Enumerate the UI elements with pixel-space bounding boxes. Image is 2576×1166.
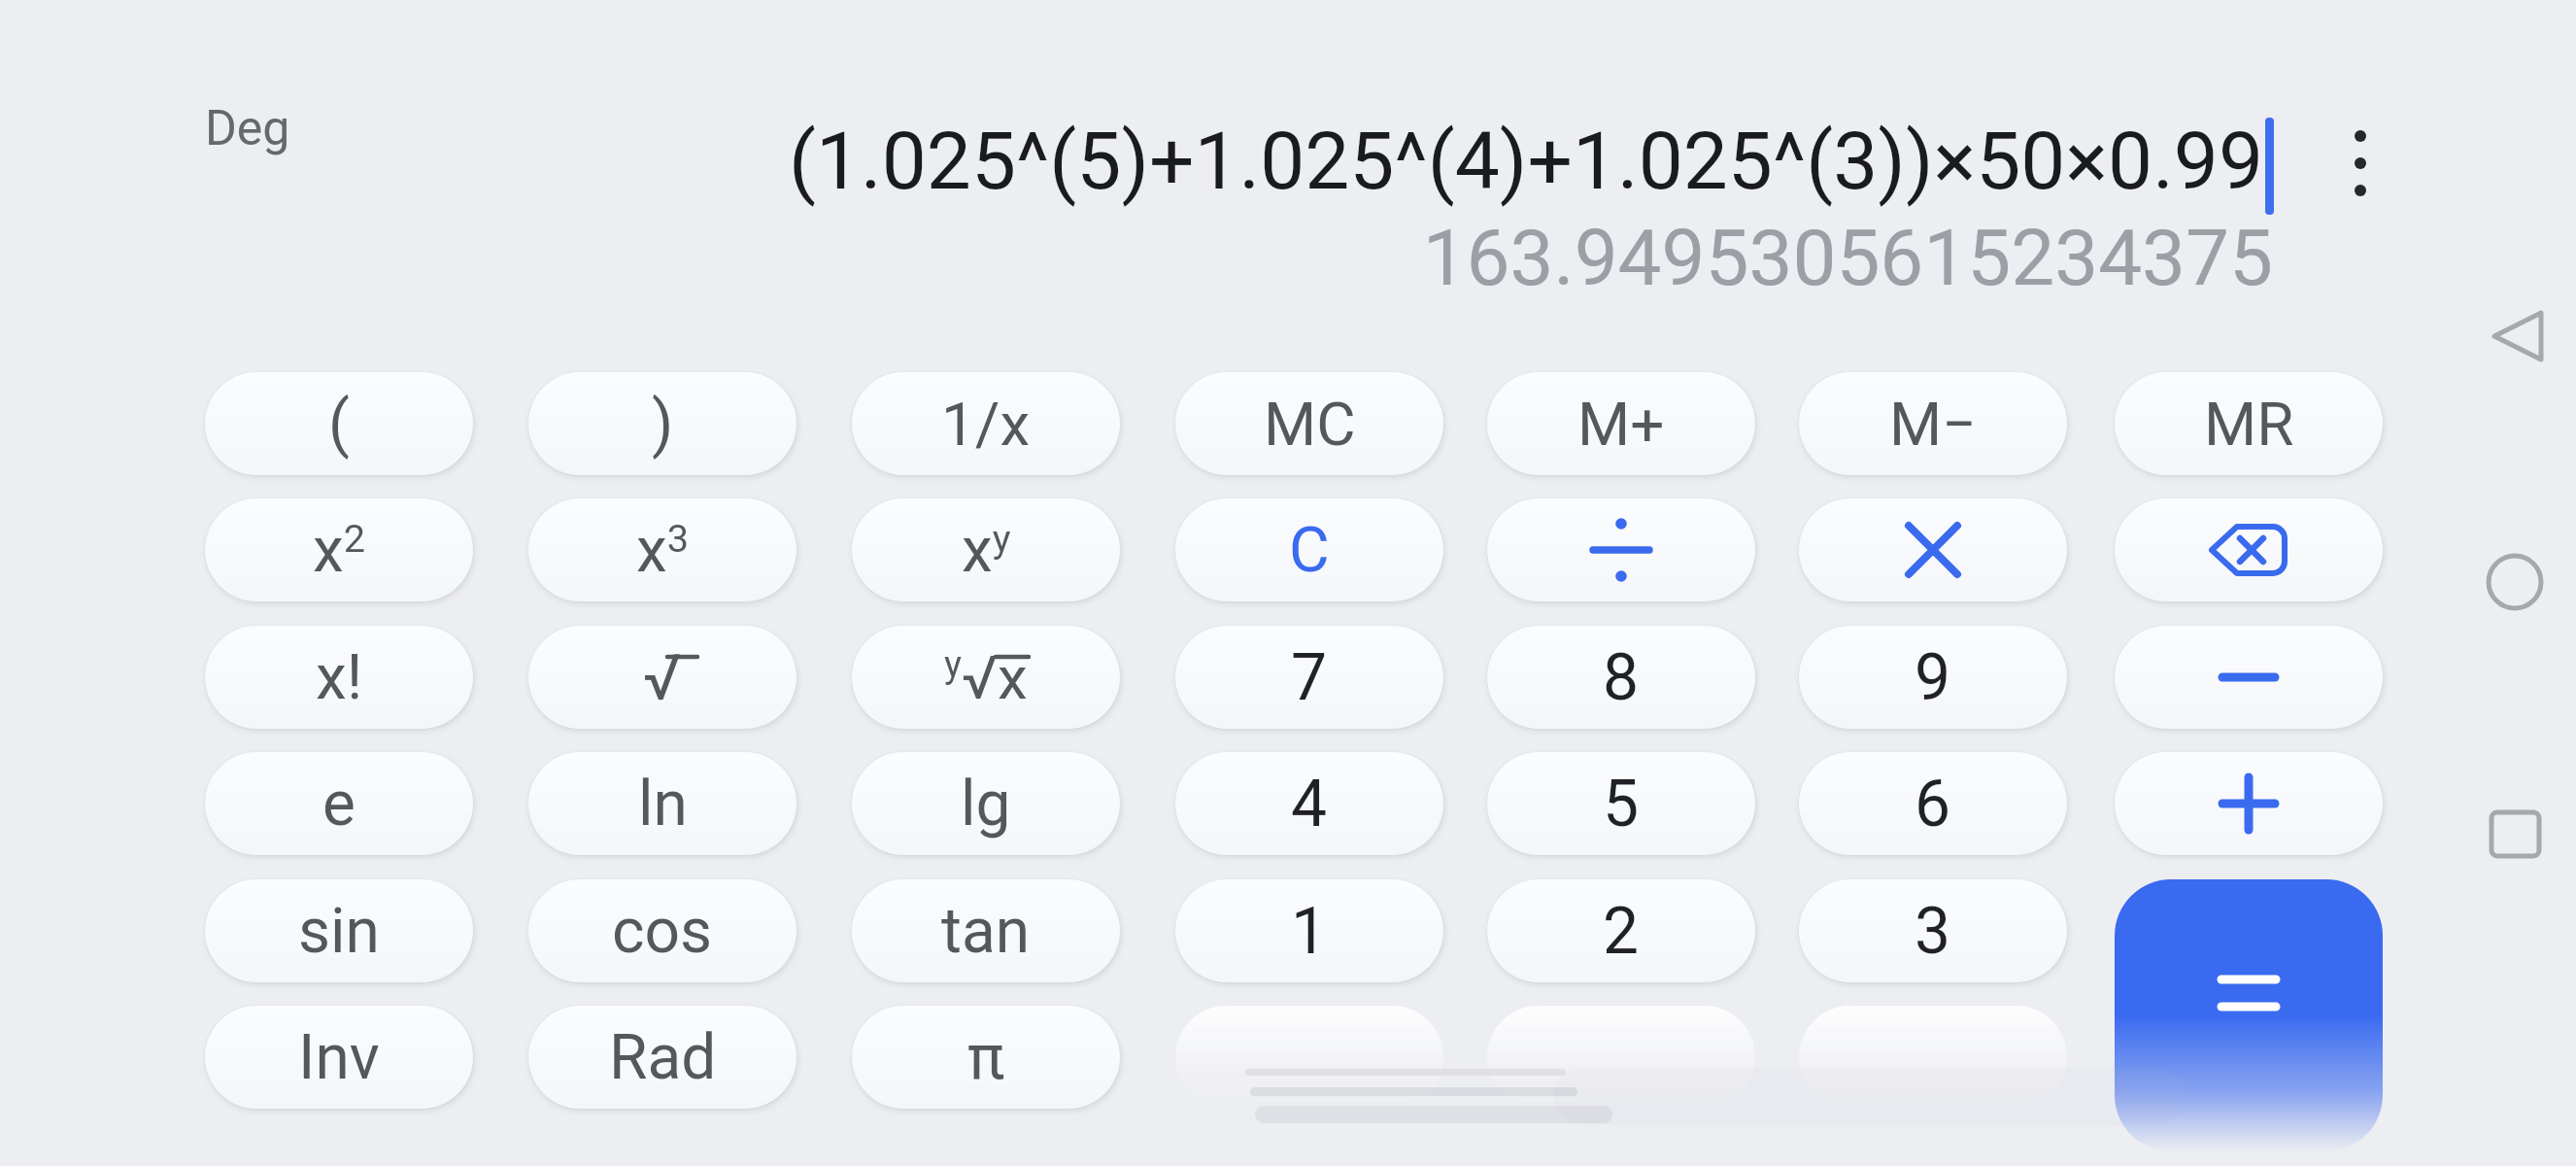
button[interactable]: MR <box>2115 372 2383 475</box>
staticText: 4 <box>1291 767 1328 841</box>
button[interactable] <box>2115 498 2383 601</box>
button[interactable] <box>2467 288 2568 389</box>
button[interactable]: Inv <box>205 1006 473 1109</box>
staticText: MR <box>2204 389 2294 460</box>
button[interactable] <box>2467 532 2568 633</box>
button[interactable] <box>1799 498 2067 601</box>
button[interactable]: 8 <box>1487 626 1755 729</box>
staticText: 3 <box>1915 894 1951 969</box>
staticText: 1 <box>1291 894 1328 969</box>
staticText: 8 <box>1603 640 1640 715</box>
button[interactable]: cos <box>528 879 797 982</box>
staticText: ) <box>652 388 674 461</box>
staticText: 2 <box>1603 894 1640 969</box>
button[interactable]: 3 <box>1799 879 2067 982</box>
staticText: M− <box>1889 389 1977 460</box>
staticText: (1.025^(5)+1.025^(4)+1.025^(3))×50×0.99 <box>0 115 2263 208</box>
button[interactable]: lg <box>852 752 1120 855</box>
button[interactable] <box>2115 879 2383 1151</box>
staticText: x! <box>316 641 363 714</box>
staticText: 7 <box>1291 640 1328 715</box>
button[interactable]: M+ <box>1487 372 1755 475</box>
button[interactable]: xy <box>852 498 1120 601</box>
staticText: xy <box>962 514 1011 587</box>
button[interactable]: 5 <box>1487 752 1755 855</box>
staticText: ln <box>638 768 688 840</box>
staticText: 163.9495305615234375 <box>0 213 2273 304</box>
staticText: MC <box>1264 389 1356 460</box>
button[interactable]: √ <box>528 626 797 729</box>
staticText: M+ <box>1577 389 1665 460</box>
button[interactable]: 9 <box>1799 626 2067 729</box>
staticText: lg <box>961 768 1011 840</box>
button[interactable]: 1 <box>1175 879 1443 982</box>
staticText: tan <box>941 895 1031 968</box>
button[interactable]: 7 <box>1175 626 1443 729</box>
staticText: e <box>322 768 356 840</box>
button[interactable] <box>2115 752 2383 855</box>
button[interactable]: ) <box>528 372 797 475</box>
button[interactable]: Deg <box>205 100 290 157</box>
button[interactable] <box>1487 498 1755 601</box>
button[interactable]: Rad <box>528 1006 797 1109</box>
staticText: 6 <box>1915 767 1951 841</box>
staticText: Rad <box>609 1021 717 1094</box>
button[interactable]: 2 <box>1487 879 1755 982</box>
button[interactable]: y√x <box>852 626 1120 729</box>
button[interactable]: x! <box>205 626 473 729</box>
button[interactable]: e <box>205 752 473 855</box>
button[interactable]: 6 <box>1799 752 2067 855</box>
staticText: x2 <box>313 514 366 587</box>
staticText: 5 <box>1603 767 1640 841</box>
staticText: sin <box>298 895 380 968</box>
button[interactable]: x3 <box>528 498 797 601</box>
button[interactable] <box>2467 783 2568 884</box>
button[interactable]: MC <box>1175 372 1443 475</box>
staticText: C <box>1289 514 1330 587</box>
button[interactable]: 4 <box>1175 752 1443 855</box>
staticText: Inv <box>298 1021 380 1094</box>
staticText: x3 <box>636 514 690 587</box>
button[interactable] <box>2115 626 2383 729</box>
button[interactable]: π <box>852 1006 1120 1109</box>
button[interactable]: ln <box>528 752 797 855</box>
button[interactable] <box>2331 126 2390 204</box>
button[interactable]: 1/x <box>852 372 1120 475</box>
button[interactable]: M− <box>1799 372 2067 475</box>
staticText: 9 <box>1915 640 1951 715</box>
staticText: 1/x <box>941 389 1031 460</box>
button[interactable]: tan <box>852 879 1120 982</box>
staticText: √ <box>643 640 682 715</box>
staticText: cos <box>612 895 713 968</box>
button[interactable]: sin <box>205 879 473 982</box>
staticText: π <box>967 1021 1005 1094</box>
button[interactable]: ( <box>205 372 473 475</box>
staticText: y√x <box>944 642 1028 713</box>
staticText: ( <box>328 388 350 461</box>
button[interactable]: C <box>1175 498 1443 601</box>
button[interactable]: x2 <box>205 498 473 601</box>
